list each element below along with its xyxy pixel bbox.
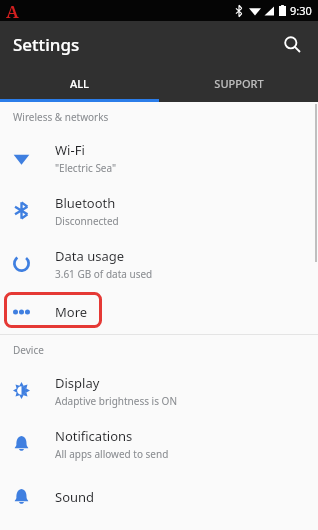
staticText: Device: [13, 343, 44, 357]
staticText: All apps allowed to send: [55, 447, 169, 461]
button[interactable]: More: [0, 290, 318, 334]
button[interactable]: Notifications: [0, 417, 318, 470]
staticText: Adaptive brightness is ON: [55, 394, 177, 408]
staticText: 3.61 GB of data used: [55, 267, 153, 281]
button[interactable]: ALL: [0, 67, 159, 99]
staticText: A: [6, 0, 19, 21]
staticText: Data usage: [55, 247, 125, 265]
staticText: 9:30: [290, 3, 312, 18]
staticText: Notifications: [55, 427, 133, 445]
staticText: Display: [55, 374, 100, 392]
staticText: Wi-Fi: [55, 141, 85, 159]
staticText: Disconnected: [55, 214, 119, 228]
staticText: SUPPORT: [214, 76, 264, 91]
staticText: Wireless & networks: [13, 110, 109, 124]
staticText: Settings: [13, 33, 80, 56]
staticText: ALL: [70, 76, 89, 91]
button[interactable]: Display: [0, 364, 318, 417]
button[interactable]: Bluetooth: [0, 184, 318, 237]
staticText: More: [55, 303, 88, 321]
staticText: "Electric Sea": [55, 161, 117, 175]
button[interactable]: Data usage: [0, 237, 318, 290]
staticText: Bluetooth: [55, 194, 116, 212]
staticText: Sound: [55, 488, 95, 506]
button[interactable]: Search: [274, 26, 310, 62]
button[interactable]: Sound: [0, 470, 318, 523]
button[interactable]: SUPPORT: [159, 67, 318, 99]
button[interactable]: Wi-Fi: [0, 131, 318, 184]
